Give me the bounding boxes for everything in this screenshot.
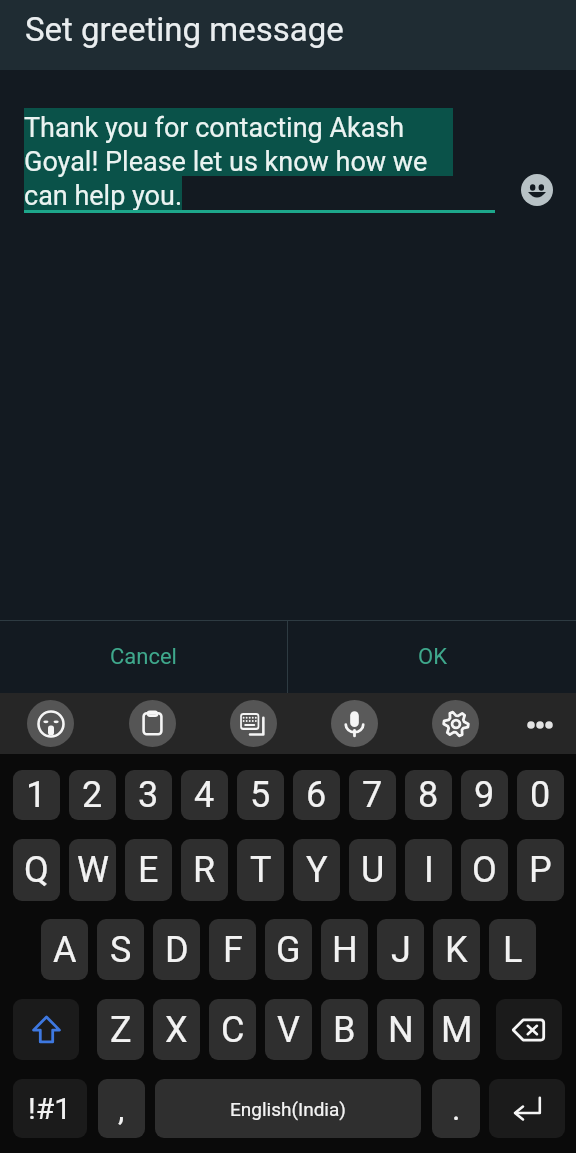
staticText: 2 [82,774,103,816]
button[interactable]: , [98,1079,145,1138]
button[interactable]: M [433,999,480,1060]
staticText: I [424,849,434,891]
staticText: 7 [362,774,383,816]
staticText: Q [24,849,49,891]
staticText: D [165,929,189,971]
button[interactable]: S [97,919,144,980]
staticText: B [333,1009,356,1051]
button[interactable]: 1 [13,770,60,820]
staticText: . [452,1090,461,1128]
button[interactable]: English(India) [155,1079,421,1138]
staticText: 4 [194,774,215,816]
button[interactable]: V [265,999,312,1060]
staticText: K [445,929,468,971]
staticText: 8 [418,774,439,816]
staticText: Cancel [110,644,177,670]
staticText: G [276,929,301,971]
button[interactable]: F [209,919,256,980]
button[interactable]: B [321,999,368,1060]
button[interactable]: Voice input [331,700,378,747]
button[interactable]: C [209,999,256,1060]
button[interactable]: Z [97,999,144,1060]
button[interactable]: Backspace [496,999,562,1060]
button[interactable]: E [125,839,172,901]
button[interactable]: Emoji [521,174,553,206]
staticText: A [53,929,77,971]
button[interactable]: O [461,839,508,901]
button[interactable]: D [153,919,200,980]
button[interactable]: U [349,839,396,901]
staticText: W [77,849,109,891]
staticText: OK [418,644,447,670]
staticText: M [441,1009,473,1051]
staticText: S [110,929,132,971]
staticText: L [503,929,523,971]
button[interactable]: Shift [13,999,79,1060]
button[interactable]: !#1 [13,1079,87,1138]
staticText: X [165,1009,188,1051]
staticText: E [138,849,159,891]
button[interactable]: OK [288,621,576,693]
staticText: 0 [530,774,551,816]
button[interactable]: A [41,919,88,980]
staticText: N [388,1009,414,1051]
staticText: J [391,929,411,971]
staticText: Y [306,849,328,891]
staticText: can help you. [24,180,183,212]
button[interactable]: 4 [181,770,228,820]
button[interactable]: P [517,839,564,901]
button[interactable]: W [69,839,116,901]
button[interactable]: Emoji [27,700,74,747]
staticText: 6 [306,774,327,816]
button[interactable]: Cancel [0,621,287,693]
staticText: P [529,849,552,891]
button[interactable]: 7 [349,770,396,820]
button[interactable]: Q [13,839,60,901]
staticText: 1 [26,774,47,816]
button[interactable]: J [377,919,424,980]
button[interactable]: K [433,919,480,980]
button[interactable]: L [489,919,536,980]
staticText: , [118,1090,125,1128]
button[interactable]: More options [517,702,563,748]
staticText: 5 [250,774,271,816]
button[interactable]: X [153,999,200,1060]
button[interactable]: 8 [405,770,452,820]
button[interactable]: G [265,919,312,980]
button[interactable]: Y [293,839,340,901]
staticText: 9 [474,774,495,816]
staticText: R [193,849,216,891]
button[interactable]: Keyboard layouts [230,700,277,747]
staticText: T [250,849,272,891]
button[interactable]: T [237,839,284,901]
button[interactable]: 0 [517,770,564,820]
staticText: Z [110,1009,132,1051]
button[interactable]: Enter [489,1079,565,1138]
staticText: Set greeting message [25,10,344,49]
button[interactable]: R [181,839,228,901]
staticText: F [223,929,243,971]
button[interactable]: H [321,919,368,980]
staticText: English(India) [230,1098,346,1120]
staticText: Thank you for contacting Akash [24,112,405,144]
button[interactable]: Settings [432,700,479,747]
staticText: O [472,849,497,891]
button[interactable]: 2 [69,770,116,820]
button[interactable]: 9 [461,770,508,820]
staticText: !#1 [28,1091,72,1126]
button[interactable]: N [377,999,424,1060]
button[interactable]: I [405,839,452,901]
button[interactable]: 6 [293,770,340,820]
staticText: C [221,1009,245,1051]
button[interactable]: Clipboard [129,700,176,747]
staticText: Goyal! Please let us know how we [24,146,428,178]
button[interactable]: 3 [125,770,172,820]
button[interactable]: . [432,1079,480,1138]
staticText: 3 [138,774,159,816]
staticText: U [361,849,385,891]
button[interactable]: 5 [237,770,284,820]
staticText: H [332,929,358,971]
staticText: V [277,1009,300,1051]
